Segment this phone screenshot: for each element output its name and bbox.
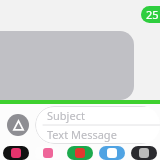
- button[interactable]: 25: [141, 6, 160, 23]
- button[interactable]: Maps app: [64, 146, 96, 160]
- button[interactable]: Subject: [35, 106, 160, 144]
- button[interactable]: Photos app: [0, 146, 32, 160]
- button[interactable]: Fitness app: [128, 146, 160, 160]
- staticText: Subject: [47, 108, 85, 123]
- button[interactable]: Apple Music app: [96, 146, 128, 160]
- button[interactable]: Music app: [32, 146, 64, 160]
- staticText: Text Message: [47, 127, 117, 142]
- staticText: 25: [146, 7, 159, 22]
- button[interactable]: App Store apps: [7, 114, 29, 136]
- button[interactable]: [0, 31, 134, 100]
